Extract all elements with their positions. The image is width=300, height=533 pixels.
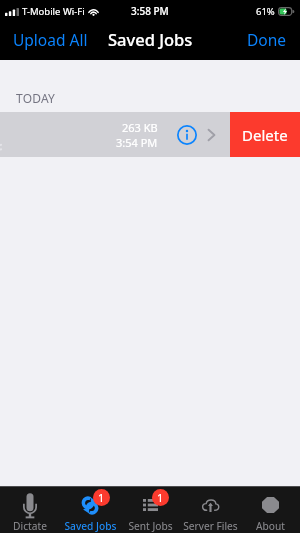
staticText: 3:54 PM [116,135,158,150]
staticText: 1 [157,490,164,505]
staticText: Delete [242,125,288,145]
staticText: Server Files [183,519,238,533]
button[interactable]: 1 [60,487,120,533]
button[interactable]: Upload All [0,23,101,60]
staticText: 1 [98,490,105,505]
button[interactable]: 1 [120,487,180,533]
staticText: Upload All [13,29,88,50]
staticText: T-Mobile Wi-Fi [22,5,85,18]
button[interactable]: Done [234,23,300,60]
button[interactable]: More info [177,125,197,145]
button[interactable]: Dictate [0,487,60,533]
button[interactable]: About [240,487,300,533]
staticText: About [256,519,285,533]
staticText: Saved Jobs [108,28,193,50]
button[interactable]: Server Files [180,487,240,533]
staticText: Sent Jobs [128,519,173,533]
staticText: 3:58 PM [131,4,169,18]
button[interactable]: Delete [230,112,300,157]
staticText: Dictate [13,519,47,533]
staticText: 61% [256,5,275,18]
staticText: Done [247,29,287,50]
staticText: TODAY [16,90,56,106]
staticText: 263 KB [122,120,158,135]
button[interactable]: 263 KB [0,112,230,157]
staticText: Saved Jobs [64,519,117,533]
